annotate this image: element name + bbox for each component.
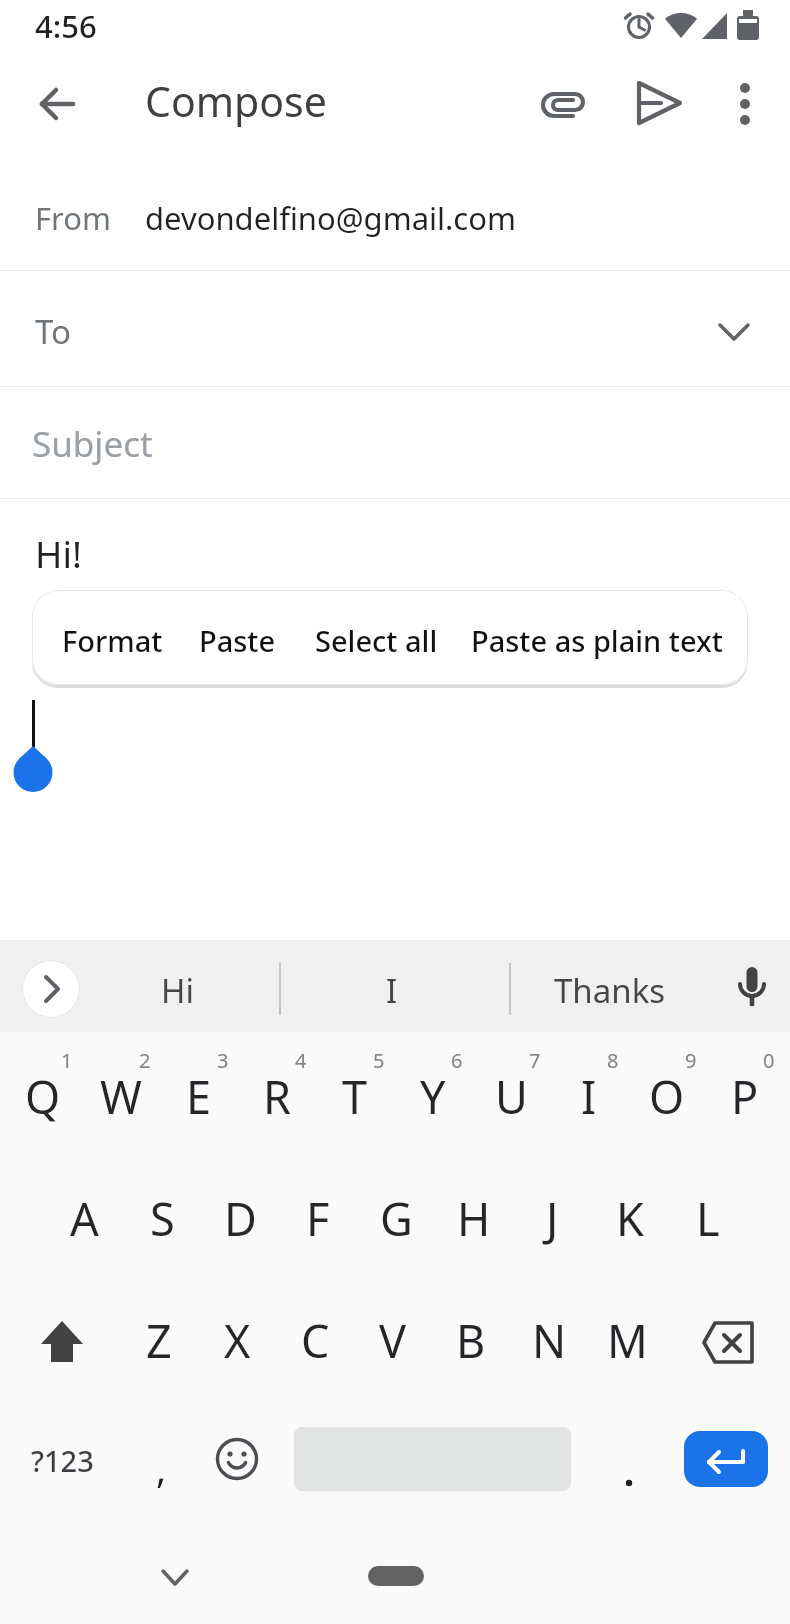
button[interactable]	[626, 72, 690, 136]
button[interactable]	[684, 1431, 768, 1487]
button[interactable]: U	[473, 1041, 549, 1151]
button[interactable]	[722, 958, 782, 1018]
button[interactable]: Hi	[87, 955, 267, 1025]
staticText: To	[35, 309, 72, 354]
staticText: E	[186, 1066, 212, 1127]
staticText: 4	[295, 1047, 307, 1074]
button[interactable]	[713, 72, 777, 136]
button[interactable]: Format	[47, 610, 177, 670]
button[interactable]: C	[277, 1285, 353, 1395]
button[interactable]: Y	[395, 1041, 471, 1151]
button[interactable]: X	[199, 1285, 275, 1395]
button[interactable]: Select all	[301, 610, 451, 670]
staticText: I	[581, 1066, 597, 1127]
staticText: From	[35, 197, 112, 239]
button[interactable]: J	[514, 1163, 590, 1273]
button[interactable]	[0, 166, 790, 270]
staticText: Paste	[199, 621, 276, 660]
button[interactable]	[0, 271, 790, 386]
staticText: A	[70, 1188, 99, 1249]
staticText: R	[263, 1066, 291, 1127]
button[interactable]: F	[280, 1163, 356, 1273]
button[interactable]	[145, 1550, 205, 1606]
staticText: ?123	[31, 1441, 94, 1480]
staticText: V	[379, 1310, 407, 1371]
staticText: M	[607, 1310, 648, 1371]
staticText: Format	[62, 621, 163, 660]
staticText: 1	[61, 1047, 73, 1074]
button[interactable]: L	[670, 1163, 746, 1273]
button[interactable]	[0, 387, 790, 498]
button[interactable]	[25, 72, 89, 136]
staticText: N	[532, 1310, 567, 1371]
button[interactable]	[368, 1566, 424, 1586]
button[interactable]: P	[707, 1041, 783, 1151]
button[interactable]: B	[433, 1285, 509, 1395]
button[interactable]: Thanks	[515, 955, 705, 1025]
staticText: T	[342, 1066, 368, 1127]
staticText: 5	[373, 1047, 385, 1074]
button[interactable]: Paste as plain text	[447, 610, 747, 670]
button[interactable]: I	[551, 1041, 627, 1151]
staticText: 3	[217, 1047, 229, 1074]
button[interactable]: D	[202, 1163, 278, 1273]
staticText: Select all	[315, 621, 438, 660]
staticText: G	[380, 1188, 413, 1249]
button[interactable]: O	[629, 1041, 705, 1151]
button[interactable]: G	[358, 1163, 434, 1273]
button[interactable]: E	[161, 1041, 237, 1151]
staticText: 0	[763, 1047, 775, 1074]
staticText: Hi	[161, 968, 194, 1013]
staticText: 7	[529, 1047, 541, 1074]
staticText: 2	[139, 1047, 151, 1074]
button[interactable]	[594, 1408, 664, 1512]
staticText: 6	[451, 1047, 463, 1074]
button[interactable]: R	[239, 1041, 315, 1151]
button[interactable]: Paste	[182, 610, 292, 670]
staticText: ,	[156, 1442, 167, 1494]
staticText: Hi!	[35, 528, 82, 578]
staticText: Z	[146, 1310, 172, 1371]
button[interactable]	[22, 960, 80, 1018]
staticText: Thanks	[554, 968, 666, 1013]
button[interactable]	[531, 72, 595, 136]
button[interactable]: W	[83, 1041, 159, 1151]
button[interactable]	[0, 499, 790, 940]
button[interactable]: V	[355, 1285, 431, 1395]
button[interactable]: I	[302, 955, 482, 1025]
staticText: W	[100, 1066, 142, 1127]
staticText: J	[546, 1188, 559, 1249]
staticText: B	[456, 1310, 486, 1371]
button[interactable]: H	[436, 1163, 512, 1273]
button[interactable]: ,	[126, 1416, 196, 1520]
staticText: Y	[420, 1066, 446, 1127]
staticText: U	[495, 1066, 528, 1127]
staticText: D	[224, 1188, 257, 1249]
staticText: X	[224, 1310, 251, 1371]
button[interactable]: N	[511, 1285, 587, 1395]
staticText: Subject	[32, 420, 153, 468]
staticText: L	[696, 1188, 720, 1249]
staticText: devondelfino@gmail.com	[145, 197, 516, 239]
button[interactable]	[22, 1290, 102, 1394]
button[interactable]: M	[589, 1285, 665, 1395]
button[interactable]	[198, 1410, 276, 1514]
staticText: 4:56	[35, 5, 97, 47]
button[interactable]: S	[124, 1163, 200, 1273]
button[interactable]: T	[317, 1041, 393, 1151]
button[interactable]: A	[46, 1163, 122, 1273]
staticText: C	[301, 1310, 330, 1371]
staticText: Paste as plain text	[471, 621, 723, 660]
staticText: 8	[607, 1047, 619, 1074]
staticText: 9	[685, 1047, 697, 1074]
staticText: P	[731, 1066, 759, 1127]
button[interactable]: K	[592, 1163, 668, 1273]
button[interactable]: Z	[121, 1285, 197, 1395]
button[interactable]	[688, 1290, 768, 1394]
button[interactable]: Q	[5, 1041, 81, 1151]
staticText: O	[649, 1066, 685, 1127]
staticText: F	[306, 1188, 330, 1249]
staticText: Q	[25, 1066, 61, 1127]
button[interactable]: ?123	[12, 1408, 112, 1512]
